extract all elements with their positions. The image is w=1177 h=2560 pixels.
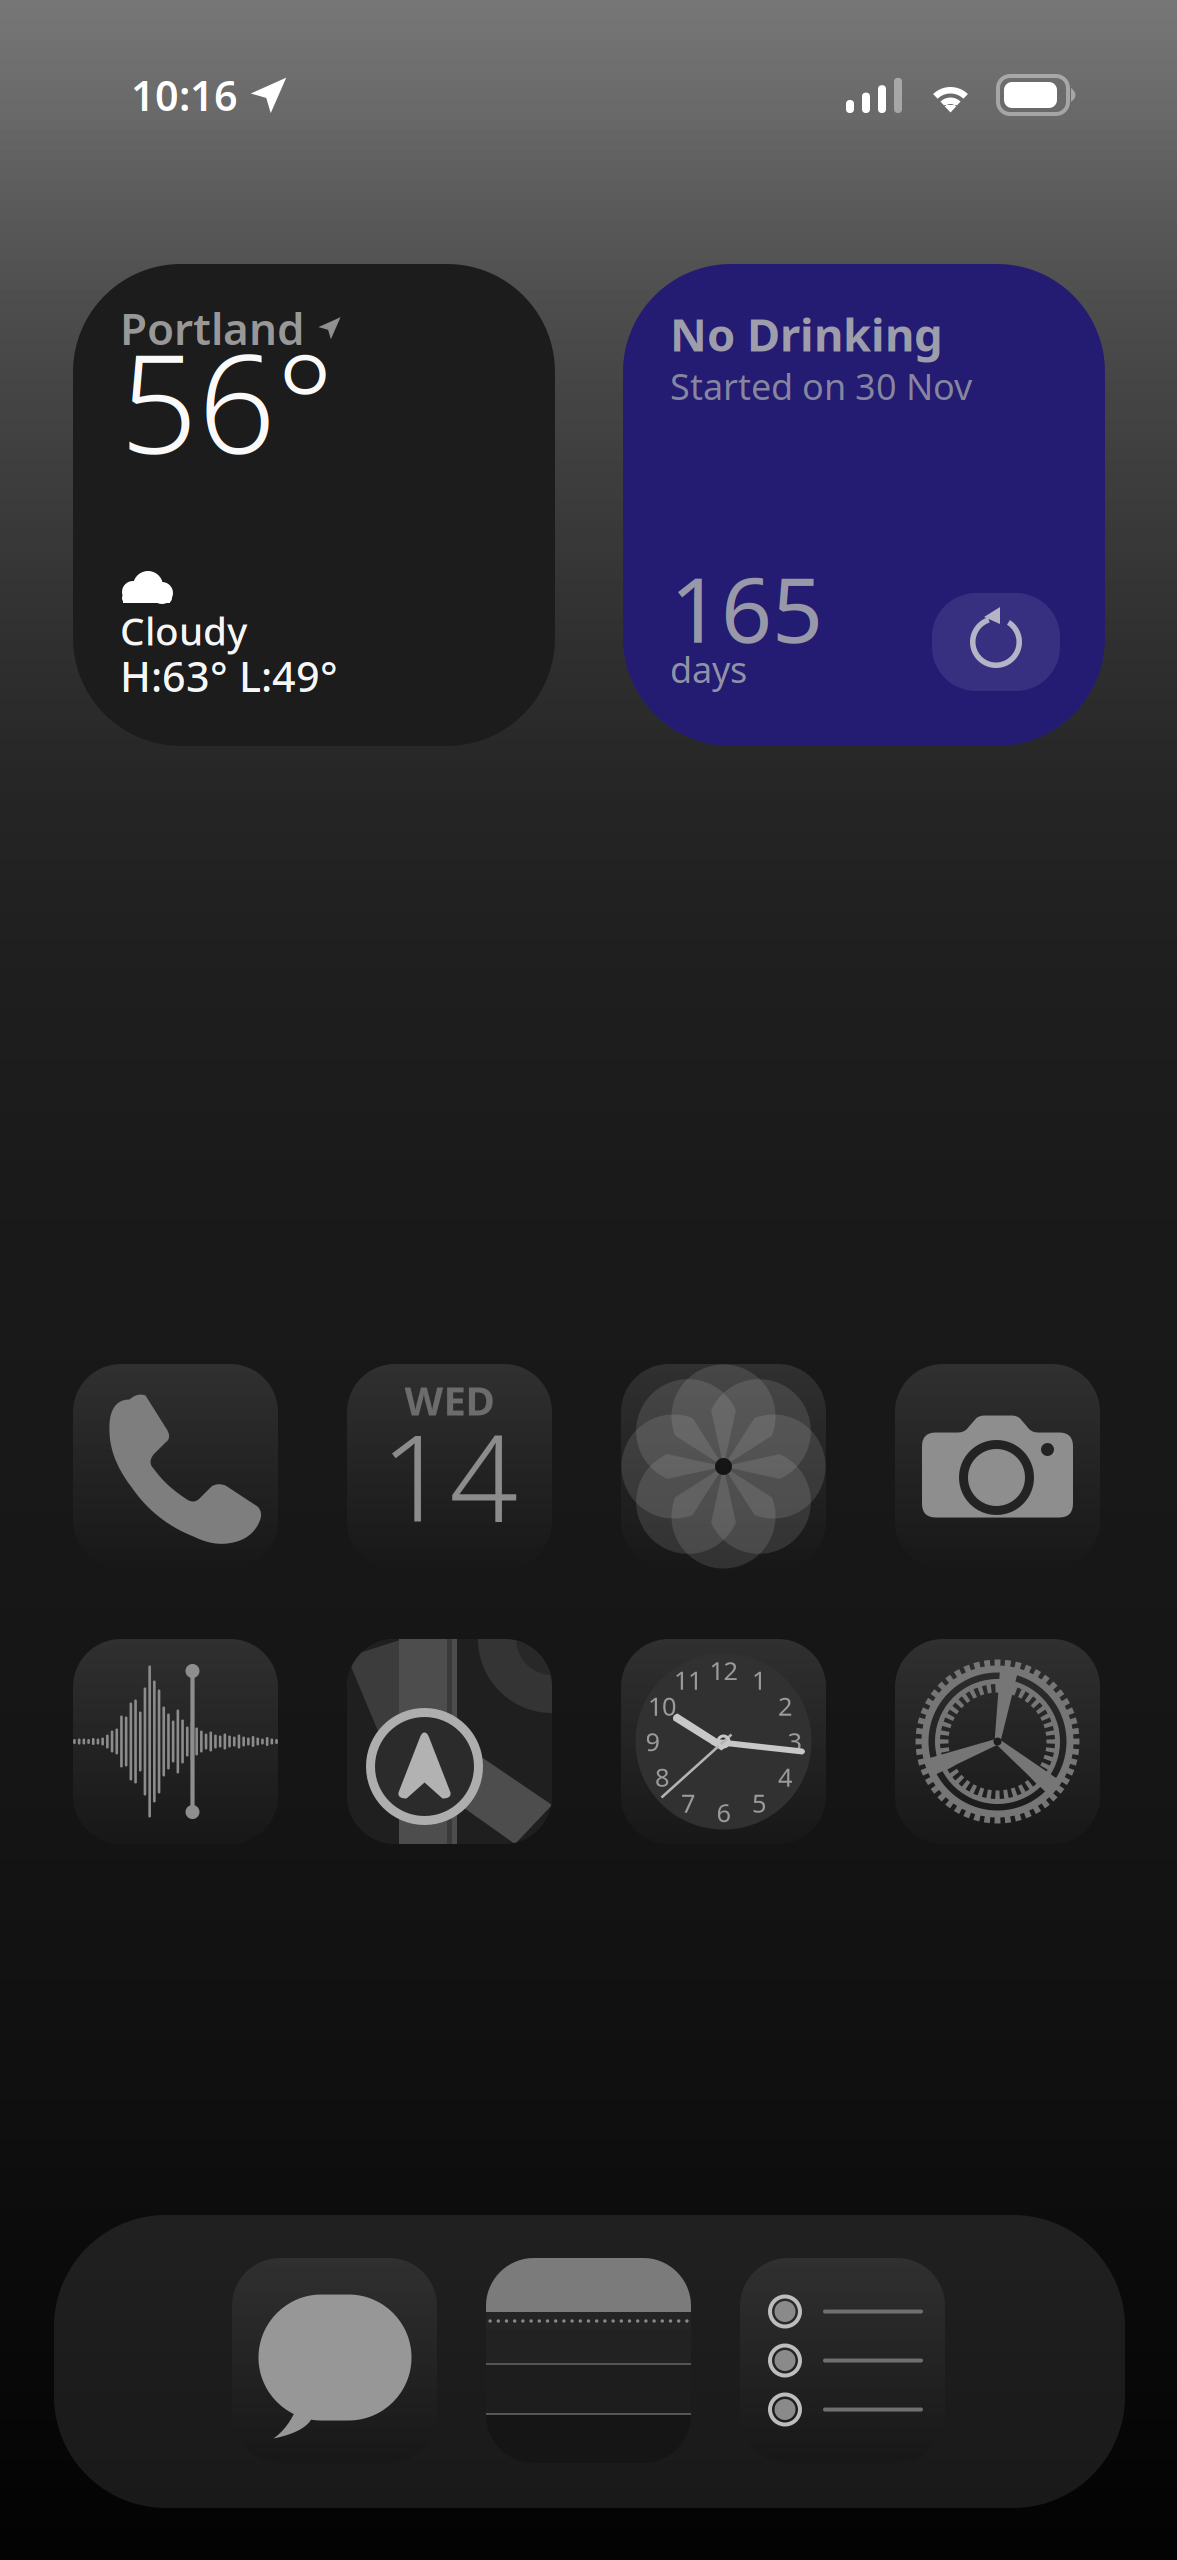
button[interactable]: Phone bbox=[73, 1364, 278, 1569]
staticText: 9 bbox=[645, 1725, 659, 1758]
staticText: Started on 30 Nov bbox=[670, 362, 972, 410]
staticText: 7 bbox=[681, 1786, 695, 1820]
button[interactable]: Voice Memos bbox=[73, 1639, 278, 1844]
staticText: 2 bbox=[778, 1689, 792, 1723]
staticText: 10:16 bbox=[131, 68, 238, 122]
staticText: No Drinking bbox=[670, 304, 943, 364]
staticText: days bbox=[670, 645, 747, 693]
staticText: 8 bbox=[655, 1760, 669, 1794]
staticText: 165 bbox=[670, 549, 823, 667]
button[interactable]: Notes bbox=[486, 2258, 691, 2463]
button[interactable]: Calendar bbox=[347, 1364, 552, 1569]
button[interactable]: Clock bbox=[621, 1639, 826, 1844]
button[interactable]: No Drinking bbox=[623, 264, 1105, 746]
staticText: 4 bbox=[778, 1760, 792, 1794]
button[interactable]: Messages bbox=[232, 2258, 437, 2463]
staticText: Portland bbox=[120, 299, 305, 357]
staticText: 11 bbox=[674, 1663, 702, 1697]
staticText: 6 bbox=[716, 1796, 730, 1829]
button[interactable]: Photos bbox=[621, 1364, 826, 1569]
button[interactable]: Maps bbox=[347, 1639, 552, 1844]
button[interactable]: Portland bbox=[73, 264, 555, 746]
button[interactable]: Reminders bbox=[740, 2258, 945, 2463]
staticText: 1 bbox=[752, 1663, 766, 1697]
button[interactable]: Camera bbox=[895, 1364, 1100, 1569]
staticText: 10 bbox=[648, 1689, 676, 1723]
staticText: 5 bbox=[752, 1786, 766, 1820]
button[interactable]: Settings bbox=[895, 1639, 1100, 1844]
staticText: 14 bbox=[380, 1395, 518, 1555]
staticText: 3 bbox=[787, 1725, 801, 1758]
button[interactable]: Reset counter bbox=[932, 593, 1060, 691]
staticText: WED bbox=[404, 1373, 494, 1426]
staticText: Cloudy bbox=[120, 605, 247, 656]
staticText: H:63° L:49° bbox=[120, 649, 338, 703]
staticText: 56° bbox=[120, 311, 334, 491]
staticText: 12 bbox=[709, 1654, 737, 1687]
